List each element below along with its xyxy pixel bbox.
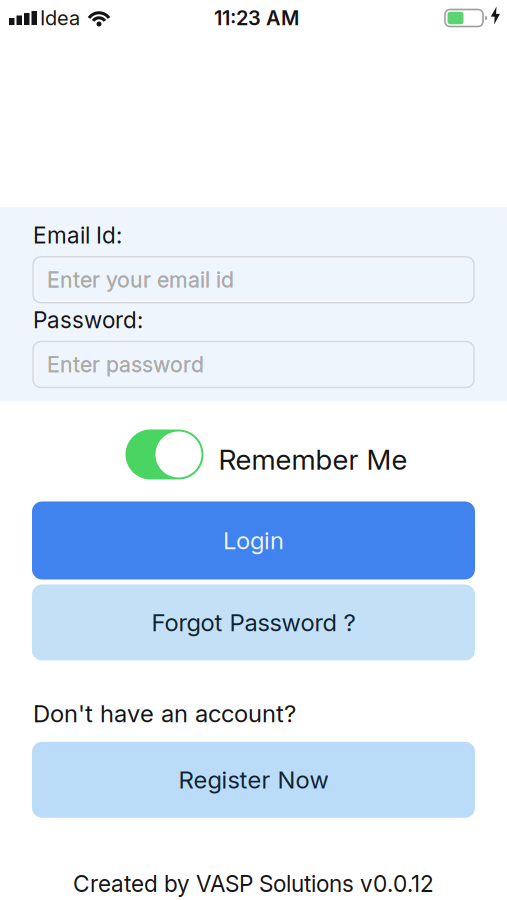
staticText: Enter password (47, 352, 204, 377)
staticText: 11:23 AM (214, 6, 299, 30)
staticText: Register Now (178, 766, 328, 794)
staticText: Idea (40, 6, 80, 30)
button[interactable]: Login (32, 501, 475, 579)
staticText: Don't have an account? (33, 699, 296, 728)
staticText: Enter your email id (47, 267, 234, 292)
textField[interactable]: Enter your email id (47, 267, 474, 292)
button[interactable]: Register Now (32, 742, 475, 818)
staticText: Email Id: (33, 222, 122, 249)
staticText: Password: (33, 307, 143, 333)
button[interactable]: Remember Me (112, 429, 394, 479)
staticText: Enter password (47, 352, 204, 377)
button[interactable]: Forgot Password ? (32, 584, 475, 660)
staticText: Remember Me (218, 443, 407, 476)
staticText: Login (223, 526, 284, 555)
textField[interactable]: Enter password (47, 352, 474, 377)
staticText: Created by VASP Solutions v0.0.12 (73, 870, 434, 897)
staticText: Enter your email id (47, 267, 234, 292)
staticText: Forgot Password ? (151, 608, 355, 637)
